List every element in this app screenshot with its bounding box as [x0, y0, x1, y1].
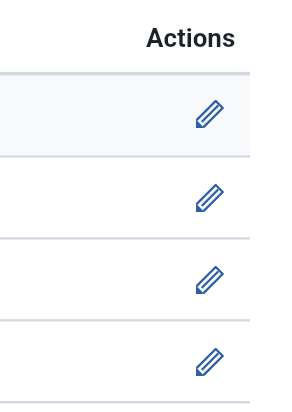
button[interactable]: Edit [191, 261, 229, 299]
button[interactable]: Edit [191, 95, 229, 133]
button[interactable]: Edit [191, 343, 229, 381]
staticText: Actions [146, 23, 236, 53]
button[interactable]: Edit [191, 179, 229, 217]
